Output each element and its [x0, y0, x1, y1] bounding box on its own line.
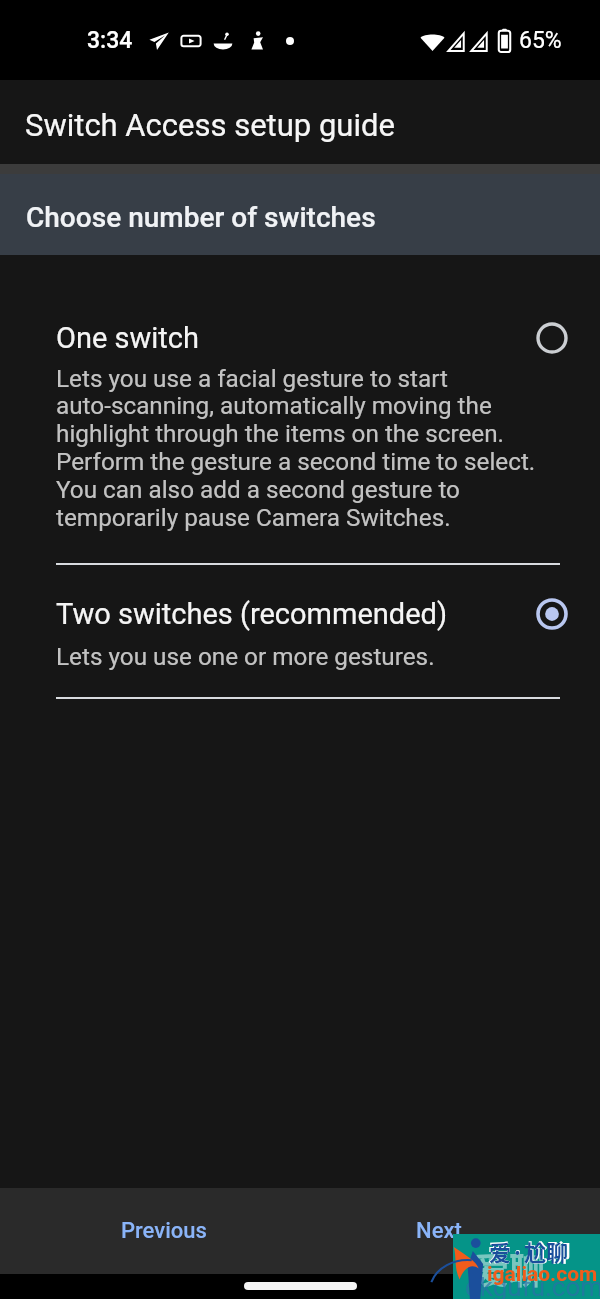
staticText: 爱·尬聊 — [488, 1234, 571, 1267]
button[interactable]: Two switches (recommended) — [0, 565, 600, 699]
staticText: 爱·尬聊 — [489, 1235, 569, 1267]
button[interactable]: Next — [369, 1188, 509, 1274]
staticText: Switch Access setup guide — [25, 107, 395, 143]
other: Select one switch — [536, 322, 568, 354]
staticText: qkgufu.com — [465, 1272, 600, 1299]
staticText: Lets you use one or more gestures. — [56, 642, 435, 670]
other: Two switches selected — [536, 598, 568, 630]
staticText: 3:34 — [87, 27, 133, 54]
staticText: Two switches (recommended) — [56, 597, 448, 631]
staticText: 爱聊 — [473, 1242, 546, 1294]
button[interactable]: Choose number of switches — [0, 174, 600, 255]
staticText: Previous — [121, 1218, 207, 1244]
staticText: 65% — [519, 27, 562, 54]
staticText: igaliao.com — [487, 1262, 598, 1287]
staticText: One switch — [56, 321, 199, 355]
staticText: Lets you use a facial gesture to start a… — [56, 364, 536, 532]
button[interactable]: Previous — [74, 1188, 254, 1274]
staticText: Choose number of switches — [26, 201, 376, 234]
staticText: Next — [416, 1218, 462, 1244]
button[interactable]: One switch — [0, 321, 600, 565]
